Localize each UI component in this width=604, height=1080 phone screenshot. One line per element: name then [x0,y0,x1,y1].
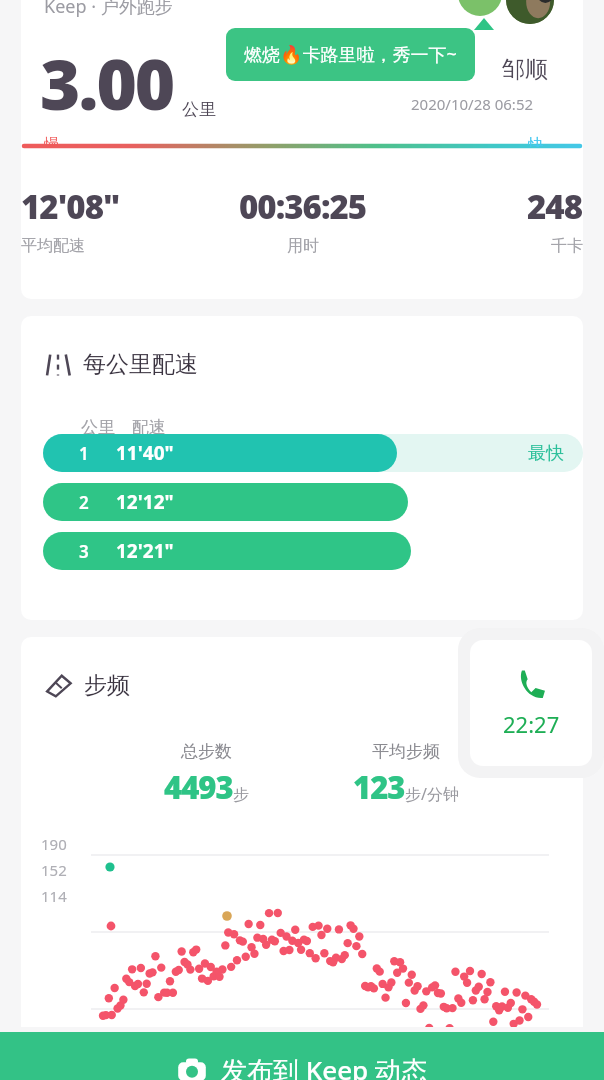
staticText: 配速 [132,417,166,438]
staticText: 123 [353,766,405,808]
staticText: 11'40" [116,440,174,466]
staticText: 4493 [164,766,233,808]
staticText: 114 [41,886,67,906]
staticText: 发布到 Keep 动态 [221,1052,427,1080]
staticText: 公里 [81,417,115,438]
staticText: 每公里配速 [83,350,198,379]
staticText: 248 [527,184,583,229]
staticText: 2020/10/28 06:52 [411,94,534,114]
staticText: 用时 [287,236,319,256]
staticText: Keep · 户外跑步 [44,0,173,19]
button[interactable]: 2 [43,483,583,521]
staticText: 2 [79,491,89,514]
staticText: 平均步频 [372,741,440,762]
staticText: 公里 [182,99,216,120]
staticText: 3 [79,540,89,563]
staticText: 平均配速 [21,236,85,256]
button[interactable]: Ongoing call 22:27 [458,628,604,778]
staticText: 12'12" [116,489,174,515]
staticText: 慢 [44,135,60,147]
staticText: 步频 [84,671,130,700]
button[interactable]: 最快 [43,434,583,472]
button[interactable]: 3 [43,532,583,570]
staticText: 总步数 [181,741,232,762]
staticText: 邹顺 [502,55,548,84]
staticText: 12'08" [21,184,120,229]
staticText: 最快 [528,442,564,465]
staticText: 步/分钟 [405,783,459,805]
staticText: 00:36:25 [239,184,367,229]
staticText: 1 [79,442,89,465]
staticText: 千卡 [551,236,583,256]
staticText: 22:27 [503,709,560,739]
staticText: 快 [528,135,544,147]
staticText: 190 [41,834,67,854]
staticText: 燃烧🔥卡路里啦，秀一下~ [244,42,457,67]
staticText: 152 [41,860,67,880]
staticText: 12'21" [116,538,174,564]
staticText: 步 [233,785,249,805]
button[interactable]: 燃烧🔥卡路里啦，秀一下~ [226,28,475,81]
staticText: 3.00 [40,36,174,130]
button[interactable]: 发布到 Keep 动态 [0,1032,604,1080]
